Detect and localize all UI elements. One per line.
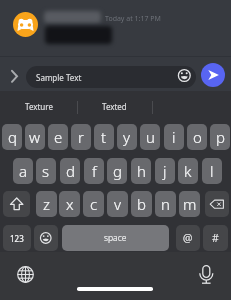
staticText: s (42, 161, 50, 181)
button[interactable]: d (60, 158, 80, 184)
staticText: m (183, 194, 197, 214)
button[interactable]: i (164, 124, 184, 150)
staticText: Sample Text (36, 72, 82, 83)
button[interactable]: x (59, 191, 80, 217)
button[interactable]: p (210, 124, 230, 150)
button[interactable] (15, 264, 36, 285)
staticText: c (90, 194, 98, 214)
button[interactable]: j (155, 158, 175, 184)
staticText: p (216, 127, 225, 147)
button[interactable]: e (48, 124, 68, 150)
button[interactable]: h (131, 158, 151, 184)
button[interactable] (201, 63, 225, 87)
staticText: a (19, 161, 28, 181)
staticText: v (114, 194, 122, 214)
button[interactable]: s (36, 158, 56, 184)
staticText: o (193, 127, 202, 147)
staticText: b (137, 194, 146, 214)
staticText: q (8, 127, 17, 147)
button[interactable]: m (179, 191, 200, 217)
button[interactable] (34, 225, 58, 251)
staticText: f (92, 161, 97, 181)
staticText: space (104, 232, 127, 244)
button[interactable]: u (140, 124, 160, 150)
staticText: @ (183, 231, 193, 245)
button[interactable]: c (83, 191, 104, 217)
button[interactable]: z (36, 191, 57, 217)
button[interactable]: f (84, 158, 104, 184)
button[interactable]: v (107, 191, 128, 217)
staticText: x (66, 194, 74, 214)
button[interactable]: o (187, 124, 207, 150)
button[interactable]: space (62, 225, 169, 251)
staticText: j (163, 161, 167, 181)
staticText: h (137, 161, 146, 181)
button[interactable]: @ (176, 225, 200, 251)
staticText: z (43, 194, 50, 214)
button[interactable]: r (71, 124, 91, 150)
button[interactable]: l (202, 158, 222, 184)
button[interactable]: Texture (0, 93, 77, 120)
button[interactable]: w (25, 124, 45, 150)
button[interactable]: 123 (3, 225, 31, 251)
staticText: r (78, 127, 84, 147)
button[interactable] (6, 66, 23, 86)
button[interactable]: k (178, 158, 198, 184)
button[interactable]: Sample Text (26, 66, 196, 88)
button[interactable]: n (155, 191, 176, 217)
button[interactable] (196, 262, 217, 286)
button[interactable]: t (94, 124, 114, 150)
staticText: Texture (25, 101, 53, 112)
button[interactable] (205, 191, 229, 217)
staticText: y (123, 127, 131, 147)
staticText: n (161, 194, 170, 214)
staticText: e (54, 127, 63, 147)
staticText: # (212, 231, 219, 245)
button[interactable]: y (117, 124, 137, 150)
button[interactable]: g (107, 158, 127, 184)
staticText: u (146, 127, 155, 147)
button[interactable]: Texted (77, 93, 152, 120)
button[interactable] (13, 12, 38, 37)
staticText: t (101, 127, 107, 147)
staticText: d (66, 161, 75, 181)
staticText: Today at 1:17 PM (105, 14, 161, 24)
staticText: g (113, 161, 122, 181)
button[interactable]: q (2, 124, 22, 150)
staticText: i (172, 127, 176, 147)
staticText: l (210, 161, 214, 181)
staticText: Texted (102, 101, 127, 112)
staticText: w (29, 127, 41, 147)
button[interactable]: # (203, 225, 228, 251)
staticText: k (184, 161, 192, 181)
staticText: 123 (10, 233, 24, 244)
button[interactable] (3, 191, 30, 217)
button[interactable]: b (131, 191, 152, 217)
button[interactable]: a (13, 158, 33, 184)
